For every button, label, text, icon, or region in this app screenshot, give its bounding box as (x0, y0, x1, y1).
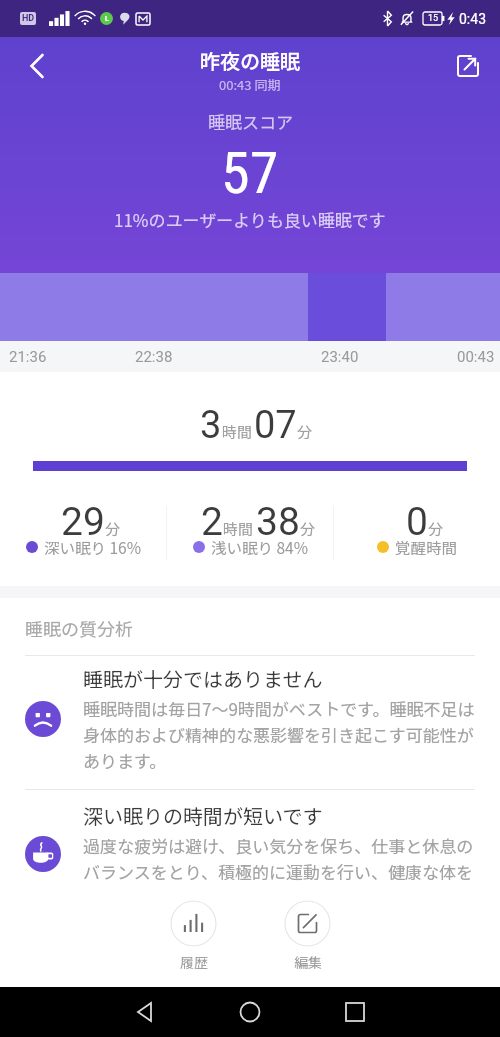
staticText: 00:43 同期 (219, 75, 281, 94)
staticText: 睡眠が十分ではありません (83, 664, 323, 693)
staticText: HD (22, 13, 35, 24)
staticText: 深い眠りの時間が短いです (83, 801, 323, 830)
staticText: 時間 (222, 421, 253, 443)
staticText: 38 (256, 499, 300, 545)
staticText: 15 (428, 13, 439, 24)
staticText: 分 (428, 518, 444, 540)
staticText: 履歴 (180, 952, 208, 972)
staticText: 深い眠り 16% (44, 536, 141, 558)
staticText: 浅い眠り 84% (211, 536, 308, 558)
staticText: 0 (406, 499, 428, 545)
staticText: 07 (254, 403, 297, 448)
staticText: 57 (221, 139, 279, 207)
staticText: 過度な疲労は避け、良い気分を保ち、仕事と休息のバランスをとり、積極的に運動を行い… (83, 833, 485, 884)
staticText: 11%のユーザーよりも良い睡眠です (114, 207, 386, 232)
staticText: 覚醒時間 (395, 536, 458, 558)
staticText: 睡眠時間は毎日7〜9時間がベストです。睡眠不足は身体的および精神的な悪影響を引き… (83, 696, 485, 773)
staticText: 23:40 (321, 348, 359, 366)
staticText: 21:36 (9, 348, 47, 366)
staticText: L (105, 15, 109, 23)
staticText: 昨夜の睡眠 (200, 46, 300, 75)
staticText: 0:43 (459, 11, 486, 27)
staticText: 29 (61, 499, 105, 545)
staticText: 睡眠スコア (208, 109, 293, 134)
staticText: 編集 (294, 952, 322, 972)
button[interactable]: 履歴 (166, 896, 221, 976)
button[interactable]: 睡眠が十分ではありません (0, 656, 500, 789)
staticText: 分 (105, 518, 121, 540)
button[interactable]: 編集 (280, 896, 335, 976)
staticText: 睡眠の質分析 (25, 615, 133, 641)
staticText: 分 (300, 518, 316, 540)
button[interactable]: Share (448, 46, 488, 86)
staticText: 00:43 (457, 348, 495, 366)
staticText: 分 (297, 421, 313, 443)
button[interactable]: 深い眠りの時間が短いです (0, 790, 500, 896)
staticText: 2 (201, 499, 223, 545)
staticText: 3 (200, 403, 222, 448)
staticText: 時間 (223, 518, 254, 540)
staticText: 22:38 (135, 348, 173, 366)
button[interactable]: Back (17, 46, 57, 86)
